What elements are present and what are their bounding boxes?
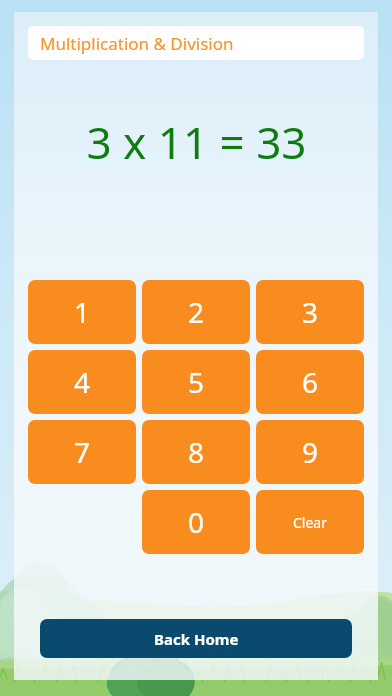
button[interactable]: 2 xyxy=(142,280,250,344)
button[interactable]: Multiplication & Division xyxy=(28,26,364,60)
button[interactable]: 1 xyxy=(28,280,136,344)
button[interactable]: 9 xyxy=(256,420,364,484)
button[interactable]: 3 xyxy=(256,280,364,344)
staticText: 3 x 11 = 33 xyxy=(86,112,307,172)
staticText: 7 xyxy=(74,433,91,471)
staticText: Clear xyxy=(293,513,327,532)
button[interactable]: 4 xyxy=(28,350,136,414)
staticText: 1 xyxy=(74,293,91,331)
staticText: 5 xyxy=(188,363,205,401)
staticText: Multiplication & Division xyxy=(40,32,234,55)
staticText: 2 xyxy=(188,293,205,331)
staticText: 4 xyxy=(74,363,91,401)
button[interactable]: 6 xyxy=(256,350,364,414)
staticText: 3 xyxy=(302,293,319,331)
button[interactable]: 5 xyxy=(142,350,250,414)
button[interactable]: 7 xyxy=(28,420,136,484)
staticText: 8 xyxy=(188,433,205,471)
staticText: 0 xyxy=(188,503,205,541)
staticText: Back Home xyxy=(154,629,239,649)
button[interactable]: Back Home xyxy=(40,619,352,658)
staticText: 6 xyxy=(302,363,319,401)
staticText: 9 xyxy=(302,433,319,471)
button[interactable]: 8 xyxy=(142,420,250,484)
button[interactable]: Clear xyxy=(256,490,364,554)
button[interactable]: 0 xyxy=(142,490,250,554)
